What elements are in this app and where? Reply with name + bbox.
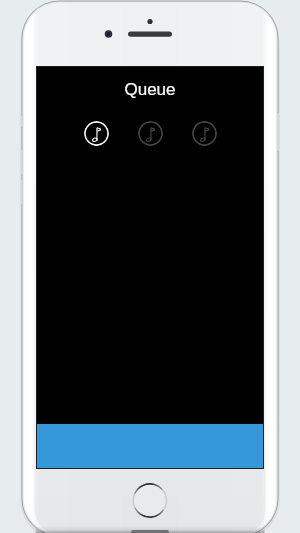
staticText: Queue bbox=[37, 80, 263, 99]
button[interactable]: Now playing track bbox=[84, 121, 109, 146]
button[interactable]: Queued track bbox=[138, 121, 163, 146]
button[interactable]: Queued track bbox=[192, 121, 217, 146]
